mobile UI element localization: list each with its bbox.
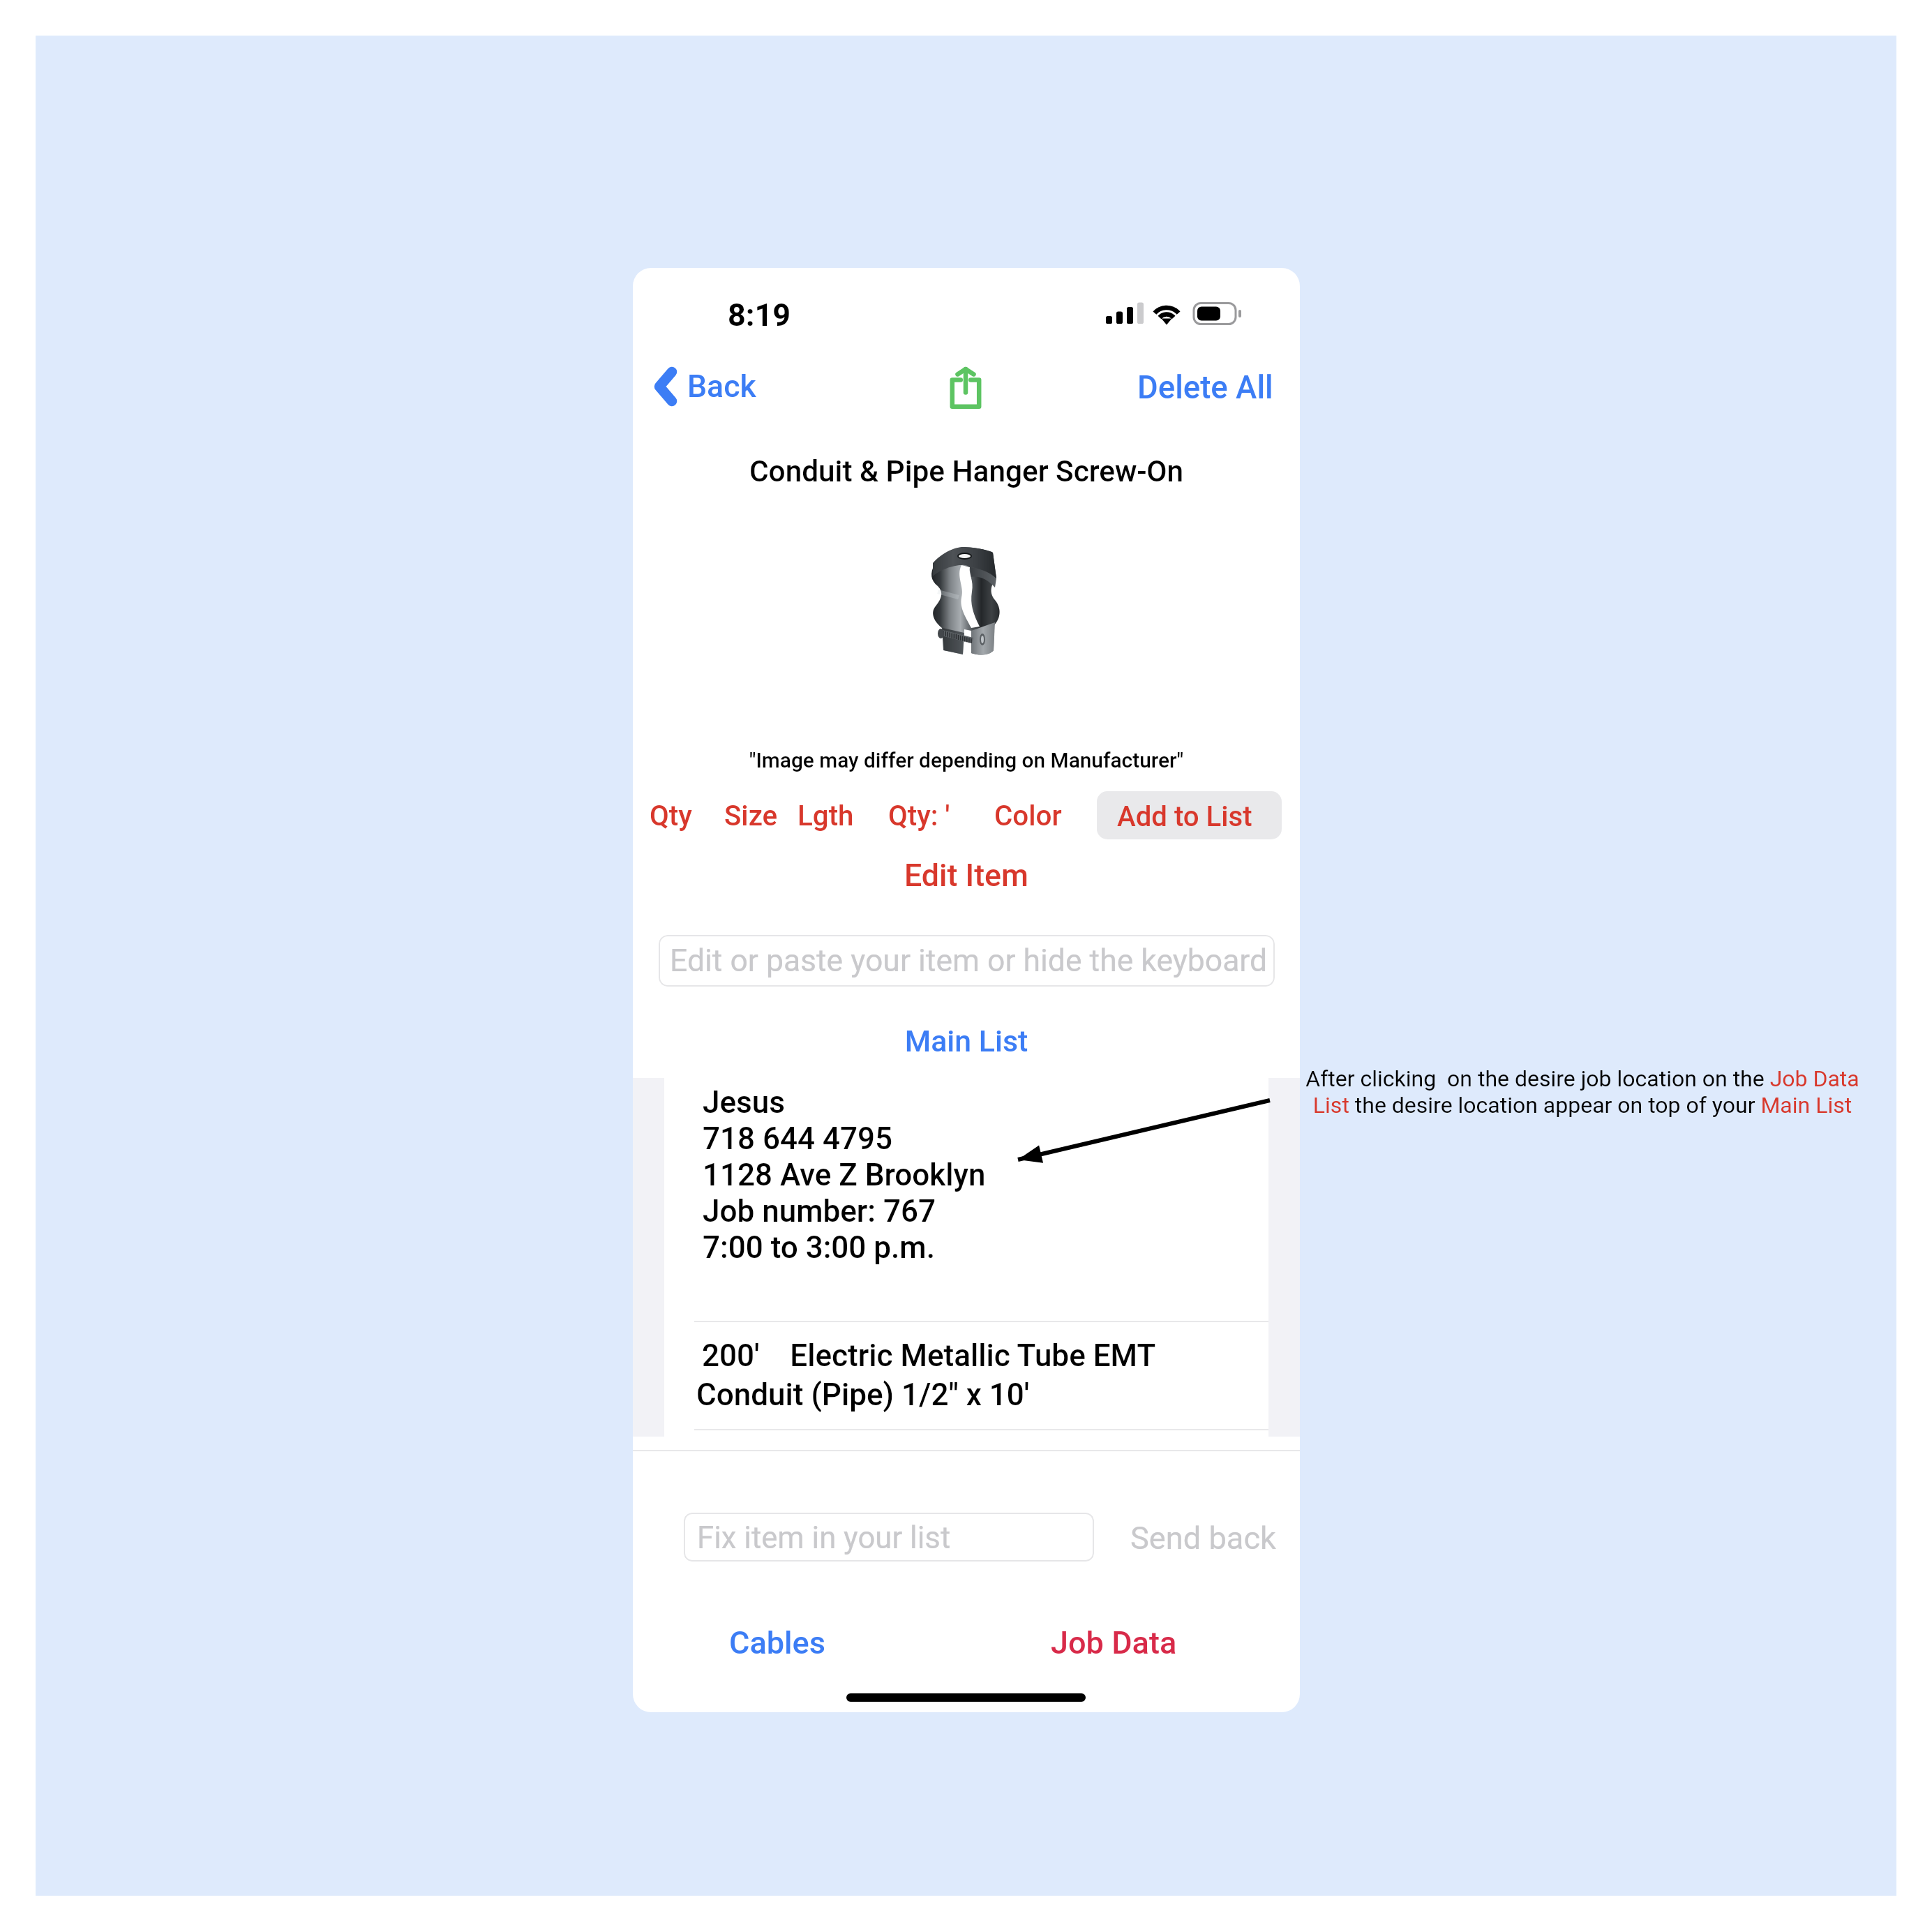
staticText: Qty [650,800,692,832]
button[interactable]: 200' Electric Metallic Tube EMT [664,1322,1268,1429]
button[interactable]: Jesus [664,1078,1268,1321]
staticText: 718 644 4795 [703,1121,892,1157]
button[interactable]: Share [941,357,991,417]
staticText: Main List [633,1024,1300,1058]
button[interactable]: Delete All [1129,362,1282,413]
staticText: Back [687,368,756,405]
staticText: 200' Electric Metallic Tube EMT [702,1338,1156,1374]
button[interactable]: Edit or paste your item or hide the keyb… [659,935,1275,987]
staticText: Conduit & Pipe Hanger Screw-On [633,454,1300,489]
button[interactable]: Fix item in your list [684,1513,1094,1562]
staticText: Fix item in your list [697,1520,951,1555]
staticText: Send back [1130,1520,1276,1557]
staticText: After clicking on the desire job locatio… [1303,1065,1862,1118]
staticText: Size [724,800,778,832]
staticText: "Image may differ depending on Manufactu… [633,748,1300,772]
staticText: Delete All [1137,369,1273,406]
button[interactable]: Lgth [788,790,864,842]
button[interactable]: Size [714,790,788,842]
staticText: Cables [729,1624,825,1661]
staticText: Job number: 767 [703,1193,936,1229]
staticText: 7:00 to 3:00 p.m. [703,1229,935,1266]
button[interactable]: Color [984,790,1072,842]
staticText: Lgth [797,800,854,832]
staticText: Edit or paste your item or hide the keyb… [670,943,1268,979]
button[interactable]: Job Data [1035,1616,1192,1670]
button[interactable]: Qty: ' [878,790,960,842]
staticText: Qty: ' [888,800,950,832]
button[interactable]: Back [645,360,765,413]
button[interactable]: Edit Item [888,851,1045,901]
button[interactable]: Cables [714,1616,841,1670]
staticText: 1128 Ave Z Brooklyn [703,1157,986,1193]
staticText: 8:19 [728,297,791,334]
staticText: Jesus [703,1084,785,1121]
staticText: Job Data [1051,1624,1177,1661]
staticText: Add to List [1117,800,1252,833]
staticText: Color [994,800,1062,832]
button[interactable]: Send back [1122,1513,1285,1564]
button[interactable]: Add to List [1097,791,1282,839]
staticText: Conduit (Pipe) 1/2" x 10' [696,1377,1030,1413]
button[interactable]: Qty [640,790,702,842]
staticText: Edit Item [904,858,1028,894]
